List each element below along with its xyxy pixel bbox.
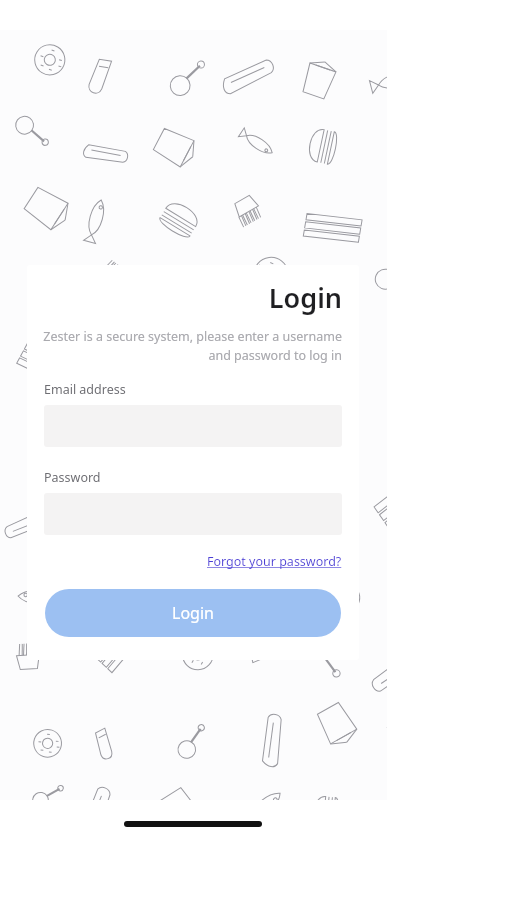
button[interactable]: Forgot your password? [207, 553, 342, 570]
button[interactable]: Login [45, 589, 341, 637]
staticText: Zester is a secure system, please enter … [43, 328, 342, 364]
staticText: Password [44, 469, 101, 486]
staticText: Forgot your password? [207, 553, 342, 570]
staticText: Login [27, 279, 342, 316]
staticText: Login [172, 602, 214, 624]
staticText: Email address [44, 381, 126, 398]
